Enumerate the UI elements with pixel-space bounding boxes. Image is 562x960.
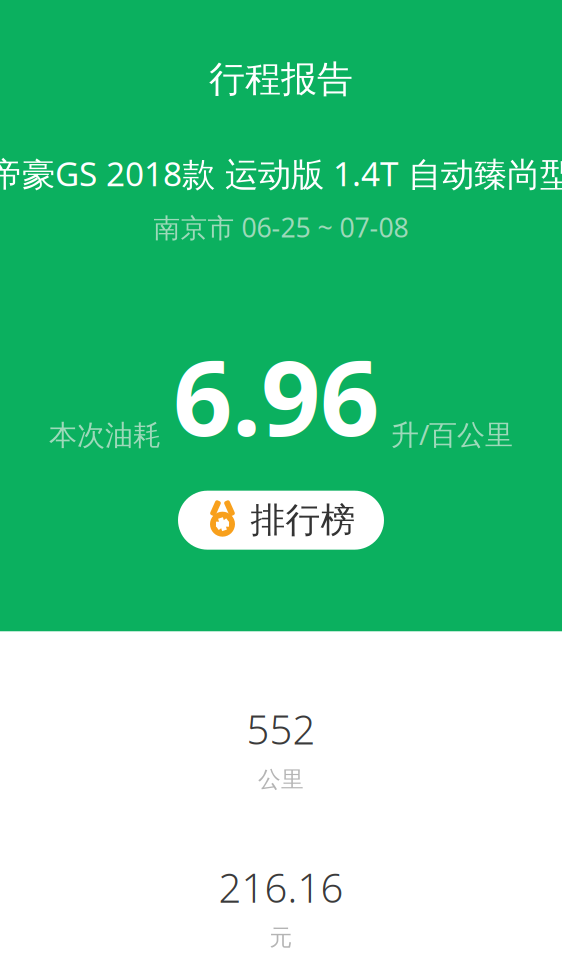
button[interactable]: 排行榜: [178, 491, 384, 550]
staticText: 行程报告: [209, 57, 353, 101]
staticText: 公里: [258, 765, 304, 793]
staticText: 216.16: [218, 861, 343, 914]
staticText: 本次油耗: [49, 418, 161, 453]
staticText: 元: [269, 924, 292, 951]
staticText: 南京市 06-25 ~ 07-08: [153, 209, 408, 245]
staticText: 6.96: [173, 327, 379, 465]
staticText: 排行榜: [250, 499, 355, 541]
staticText: 帝豪GS 2018款 运动版 1.4T 自动臻尚型: [0, 151, 562, 196]
staticText: 升/百公里: [391, 415, 513, 453]
staticText: 552: [246, 702, 315, 755]
